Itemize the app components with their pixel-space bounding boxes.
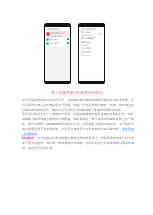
button[interactable]: 隐私与安全	[79, 41, 104, 46]
button[interactable]: 显示与外观	[79, 46, 104, 51]
staticText: 关于本应用	[81, 51, 91, 54]
staticText: 自动备份已开启	[81, 34, 93, 36]
button[interactable]: 高亮的消息条目	[45, 31, 70, 37]
staticText: 版本 1.2.3	[81, 54, 89, 56]
staticText: 我们可以先定义出一个通用的行组件，再通过参数来控制它具体的外观和行为，这样就能够…	[22, 112, 134, 136]
staticText: 同步与备份	[81, 31, 91, 34]
button[interactable]: 第三条目	[45, 41, 70, 45]
staticText: 高亮的消息条目	[51, 32, 65, 35]
staticText: 第三条目	[50, 42, 58, 45]
staticText: 显示与外观	[81, 47, 91, 50]
staticText: 在安卓应用开发的日常工作当中，设置界面和列表界面是我们最常见的两类页面。它们之间…	[22, 98, 134, 112]
staticText: 图 1 设置界面与列表界面的对比	[51, 90, 103, 95]
button[interactable]: 关于本应用	[79, 51, 104, 56]
button[interactable]: 第二条目	[45, 37, 70, 41]
staticText: 副标题文本内容	[51, 35, 63, 37]
button[interactable]: 通知与提醒设置	[79, 36, 104, 41]
button[interactable]: 同步与备份	[79, 31, 104, 36]
staticText: 隐私与安全	[81, 41, 91, 44]
staticText: 特别提示：当行的类型过多时参数列表也会变得非常庞大，此时应该考虑把它拆分成多个更…	[22, 136, 134, 150]
staticText: 消息列表界面	[47, 28, 59, 31]
staticText: 设置与账号管理页	[81, 28, 97, 31]
staticText: 管理授权	[81, 44, 88, 46]
staticText: 通知与提醒设置	[81, 37, 95, 40]
staticText: 第二条目	[50, 38, 58, 41]
